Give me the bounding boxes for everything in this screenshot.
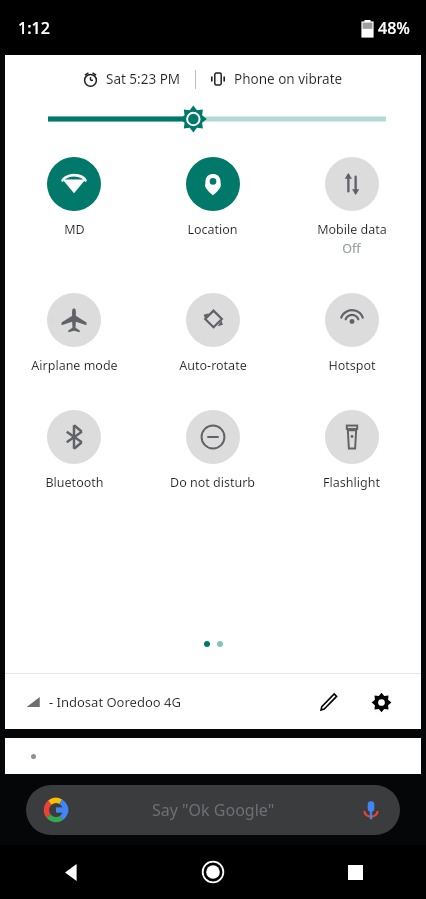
button[interactable]: Flashlight	[282, 410, 421, 491]
staticText: Flashlight	[323, 474, 380, 491]
other: Google	[44, 798, 68, 822]
staticText: 48%	[378, 17, 410, 39]
staticText: Auto-rotate	[179, 357, 247, 374]
staticText: Location	[187, 221, 238, 238]
staticText: 1:12	[18, 17, 50, 39]
staticText: Mobile data	[317, 221, 387, 238]
staticText: Off	[342, 240, 361, 257]
staticText: Phone on vibrate	[234, 70, 343, 88]
other: Alarm	[83, 72, 98, 87]
staticText: MD	[64, 221, 85, 238]
button[interactable]: Location	[143, 157, 282, 238]
button[interactable]: MD	[5, 157, 143, 238]
button[interactable]: Auto-rotate	[143, 293, 282, 374]
button[interactable]: Settings	[361, 682, 401, 722]
other: Phone on vibrate	[210, 71, 226, 87]
button[interactable]: Brightness	[5, 103, 421, 135]
staticText: Airplane mode	[31, 357, 118, 374]
button[interactable]: Bluetooth	[5, 410, 143, 491]
button[interactable]: Recents	[284, 845, 426, 899]
button[interactable]: Do not disturb	[143, 410, 282, 491]
button[interactable]: Airplane mode	[5, 293, 143, 374]
button[interactable]: Alarm	[83, 70, 181, 88]
other: Voice search	[360, 799, 382, 821]
button[interactable]: Back	[0, 845, 142, 899]
button[interactable]: Home	[142, 845, 284, 899]
staticText: Say "Ok Google"	[152, 799, 275, 821]
button[interactable]: Edit	[309, 682, 349, 722]
staticText: Hotspot	[328, 357, 376, 374]
staticText: Do not disturb	[170, 474, 255, 491]
button[interactable]: Mobile data	[282, 157, 421, 257]
staticText: - Indosat Ooredoo 4G	[49, 693, 181, 711]
button[interactable]: Phone on vibrate	[210, 70, 343, 88]
staticText: Sat 5:23 PM	[106, 70, 181, 88]
button[interactable]: Google	[26, 785, 400, 835]
staticText: Bluetooth	[45, 474, 104, 491]
button[interactable]: Hotspot	[282, 293, 421, 374]
